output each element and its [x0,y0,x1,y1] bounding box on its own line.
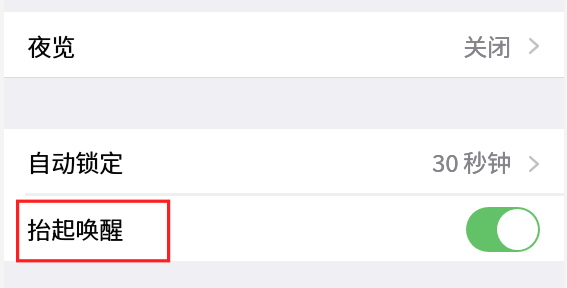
button[interactable]: 自动锁定 [4,129,564,196]
staticText: 夜览 [27,33,75,61]
staticText: 自动锁定 [27,149,123,177]
other: 更多 [529,153,539,173]
other: 更多 [529,35,539,55]
staticText: 30 [432,149,459,177]
button[interactable]: 抬起唤醒 [4,196,564,261]
staticText: 抬起唤醒 [27,216,123,244]
staticText: 关闭 [463,33,511,61]
button[interactable]: 抬起唤醒 开关 [466,207,540,252]
button[interactable]: 夜览 [4,12,564,77]
staticText: 秒钟 [463,149,511,177]
